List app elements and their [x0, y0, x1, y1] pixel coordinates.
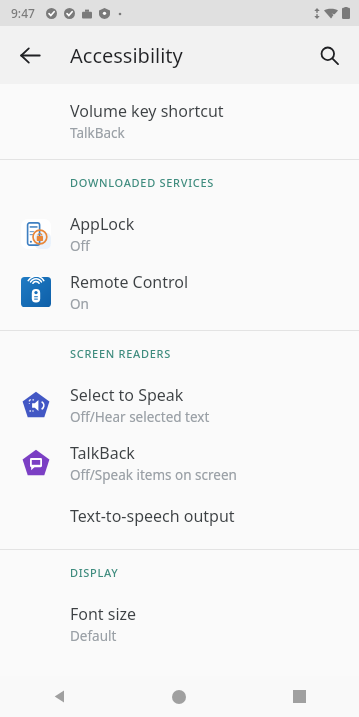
staticText: On [70, 295, 89, 313]
staticText: TalkBack [70, 124, 125, 142]
button[interactable]: Back [0, 676, 119, 717]
button[interactable]: Font size [0, 595, 359, 653]
button[interactable]: Volume key shortcut [0, 92, 359, 150]
staticText: Remote Control [70, 271, 189, 293]
button[interactable]: Text-to-speech output [0, 492, 359, 540]
button[interactable]: Select to Speak [0, 376, 359, 434]
staticText: Off [70, 237, 90, 255]
staticText: Text-to-speech output [70, 505, 235, 527]
button[interactable]: Search [307, 33, 351, 77]
staticText: Off/Speak items on screen [70, 466, 237, 484]
button[interactable]: Recent apps [239, 676, 359, 717]
staticText: Volume key shortcut [70, 100, 224, 122]
staticText: SCREEN READERS [70, 346, 171, 361]
staticText: AppLock [70, 213, 135, 235]
staticText: Select to Speak [70, 384, 184, 406]
staticText: Accessibility [70, 42, 183, 69]
staticText: Default [70, 627, 117, 645]
button[interactable]: Home [119, 676, 239, 717]
staticText: Off/Hear selected text [70, 408, 210, 426]
staticText: TalkBack [70, 442, 135, 464]
button[interactable]: Remote Control [0, 263, 359, 321]
button[interactable]: AppLock [0, 205, 359, 263]
staticText: DISPLAY [70, 565, 119, 580]
staticText: Font size [70, 603, 137, 625]
staticText: 9:47 [11, 5, 35, 21]
button[interactable]: Back [8, 33, 52, 77]
staticText: DOWNLOADED SERVICES [70, 175, 215, 190]
button[interactable]: TalkBack [0, 434, 359, 492]
